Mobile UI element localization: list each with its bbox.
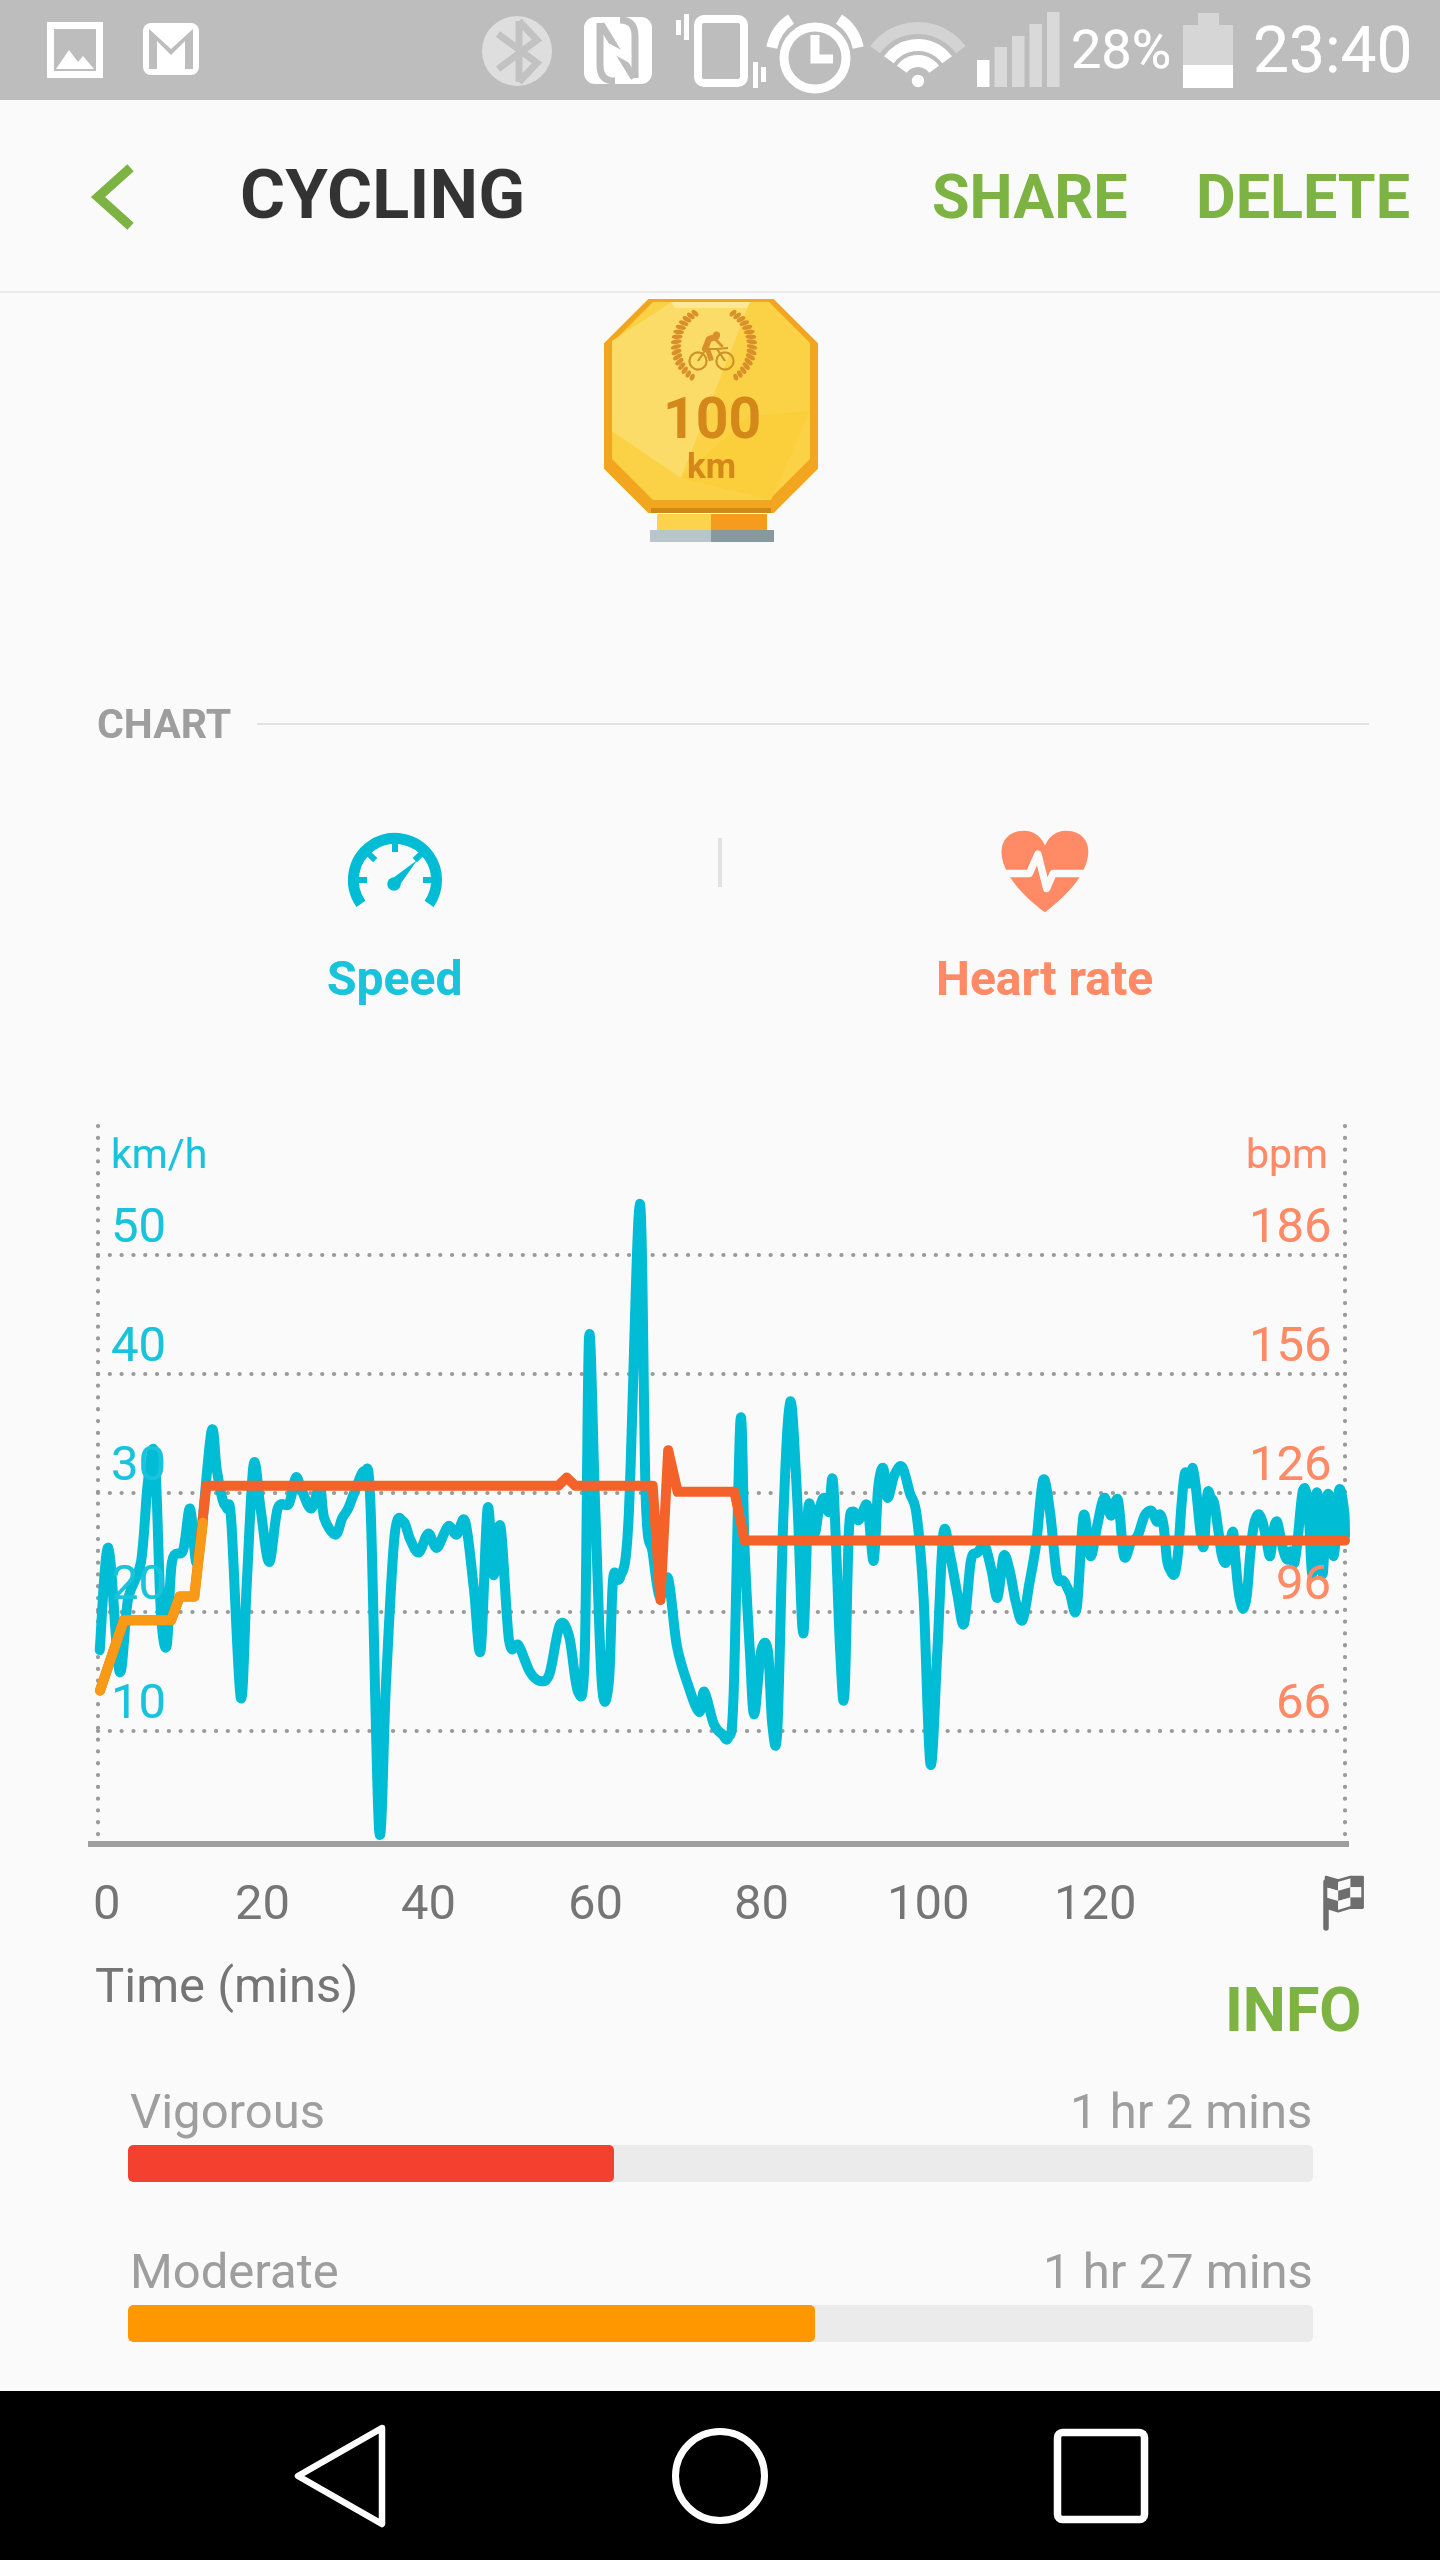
staticText: CHART <box>97 700 232 748</box>
staticText: Speed <box>327 950 463 1006</box>
staticText: 50 <box>111 1197 167 1254</box>
button[interactable]: Speed <box>200 828 590 1028</box>
staticText: 1 hr 2 mins <box>1070 2083 1313 2140</box>
staticText: 40 <box>401 1874 457 1931</box>
staticText: 96 <box>1276 1554 1332 1611</box>
staticText: 40 <box>111 1316 167 1373</box>
staticText: km <box>687 446 737 487</box>
button[interactable]: Recent apps <box>991 2391 1211 2560</box>
staticText: 0 <box>93 1874 121 1931</box>
staticText: 1 hr 27 mins <box>1043 2243 1313 2300</box>
button[interactable]: Heart rate <box>850 828 1240 1028</box>
button[interactable]: Home <box>610 2391 830 2560</box>
staticText: INFO <box>1225 1974 1362 2045</box>
staticText: 80 <box>734 1874 790 1931</box>
staticText: CYCLING <box>240 154 526 235</box>
staticText: Heart rate <box>936 950 1154 1006</box>
staticText: 23:40 <box>1253 13 1413 88</box>
staticText: 60 <box>568 1874 624 1931</box>
button[interactable]: DELETE <box>1180 121 1426 272</box>
button[interactable]: Back <box>0 100 205 293</box>
staticText: 10 <box>111 1673 167 1730</box>
staticText: SHARE <box>932 161 1128 232</box>
staticText: Time (mins) <box>95 1957 359 2014</box>
staticText: 100 <box>663 385 762 452</box>
staticText: 20 <box>235 1874 291 1931</box>
staticText: 156 <box>1249 1316 1332 1373</box>
staticText: 30 <box>111 1435 167 1492</box>
button[interactable]: SHARE <box>916 121 1144 272</box>
staticText: 66 <box>1276 1673 1332 1730</box>
button[interactable]: INFO <box>1160 1942 1362 2072</box>
button[interactable]: Back <box>230 2391 450 2560</box>
staticText: DELETE <box>1196 161 1410 232</box>
staticText: Moderate <box>130 2243 339 2300</box>
staticText: bpm <box>1246 1130 1328 1178</box>
staticText: 186 <box>1249 1197 1332 1254</box>
staticText: 28% <box>1071 18 1172 81</box>
staticText: 100 <box>887 1874 970 1931</box>
staticText: km/h <box>111 1130 208 1178</box>
staticText: Vigorous <box>130 2083 325 2140</box>
staticText: 126 <box>1249 1435 1332 1492</box>
staticText: 20 <box>111 1554 167 1611</box>
staticText: 120 <box>1054 1874 1137 1931</box>
